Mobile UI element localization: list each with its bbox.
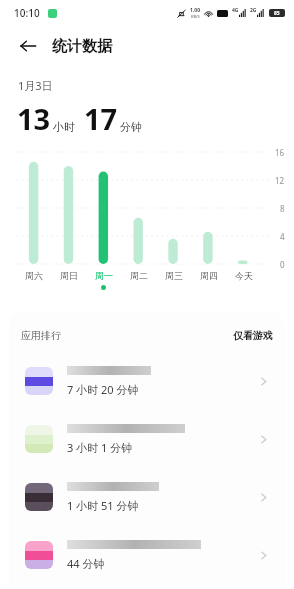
staticText: 4 bbox=[280, 231, 285, 242]
button[interactable]: 1 小时 51 分钟 bbox=[17, 468, 277, 526]
staticText: 应用排行 bbox=[21, 329, 61, 342]
button[interactable]: 周三 bbox=[156, 270, 191, 285]
other: 详情 bbox=[251, 485, 275, 509]
button[interactable]: 周四 bbox=[191, 270, 226, 285]
other: 详情 bbox=[251, 369, 275, 393]
button[interactable]: 周二 bbox=[121, 270, 156, 285]
staticText: 44 分钟 bbox=[67, 556, 105, 571]
staticText: 仅看游戏 bbox=[233, 329, 273, 342]
staticText: KB/S bbox=[191, 14, 200, 19]
staticText: 85 bbox=[274, 10, 280, 17]
staticText: 3 小时 1 分钟 bbox=[67, 440, 133, 455]
staticText: 13 bbox=[17, 99, 51, 138]
staticText: 分钟 bbox=[120, 120, 142, 134]
button[interactable]: Back bbox=[14, 32, 42, 60]
staticText: 8 bbox=[280, 203, 285, 214]
staticText: 12 bbox=[275, 175, 285, 186]
button[interactable]: 44 分钟 bbox=[17, 526, 277, 584]
staticText: 4G bbox=[232, 7, 239, 14]
staticText: 周日 bbox=[60, 270, 78, 281]
button[interactable]: 仅看游戏 bbox=[229, 325, 277, 346]
staticText: 今天 bbox=[235, 270, 253, 281]
staticText: 2G bbox=[250, 7, 257, 14]
button[interactable]: 7 小时 20 分钟 bbox=[17, 352, 277, 410]
staticText: 1 小时 51 分钟 bbox=[67, 498, 139, 513]
other: 详情 bbox=[251, 427, 275, 451]
staticText: 17 bbox=[84, 99, 118, 138]
staticText: 0 bbox=[280, 259, 285, 270]
staticText: 统计数据 bbox=[52, 37, 112, 56]
staticText: 10:10 bbox=[14, 6, 40, 20]
staticText: 1.00 bbox=[190, 7, 200, 14]
staticText: 周一 bbox=[95, 270, 113, 281]
button[interactable]: 3 小时 1 分钟 bbox=[17, 410, 277, 468]
staticText: 1月3日 bbox=[18, 78, 53, 93]
button[interactable]: 周日 bbox=[51, 270, 86, 285]
button[interactable]: 今天 bbox=[226, 270, 261, 285]
staticText: 16 bbox=[275, 147, 285, 158]
other: 详情 bbox=[251, 543, 275, 567]
staticText: 周四 bbox=[200, 270, 218, 281]
staticText: 小时 bbox=[53, 120, 75, 134]
staticText: 周六 bbox=[25, 270, 43, 281]
button[interactable]: 周一 bbox=[86, 270, 121, 290]
staticText: 7 小时 20 分钟 bbox=[67, 382, 139, 397]
staticText: 周三 bbox=[165, 270, 183, 281]
staticText: 周二 bbox=[130, 270, 148, 281]
button[interactable]: 周六 bbox=[16, 270, 51, 285]
